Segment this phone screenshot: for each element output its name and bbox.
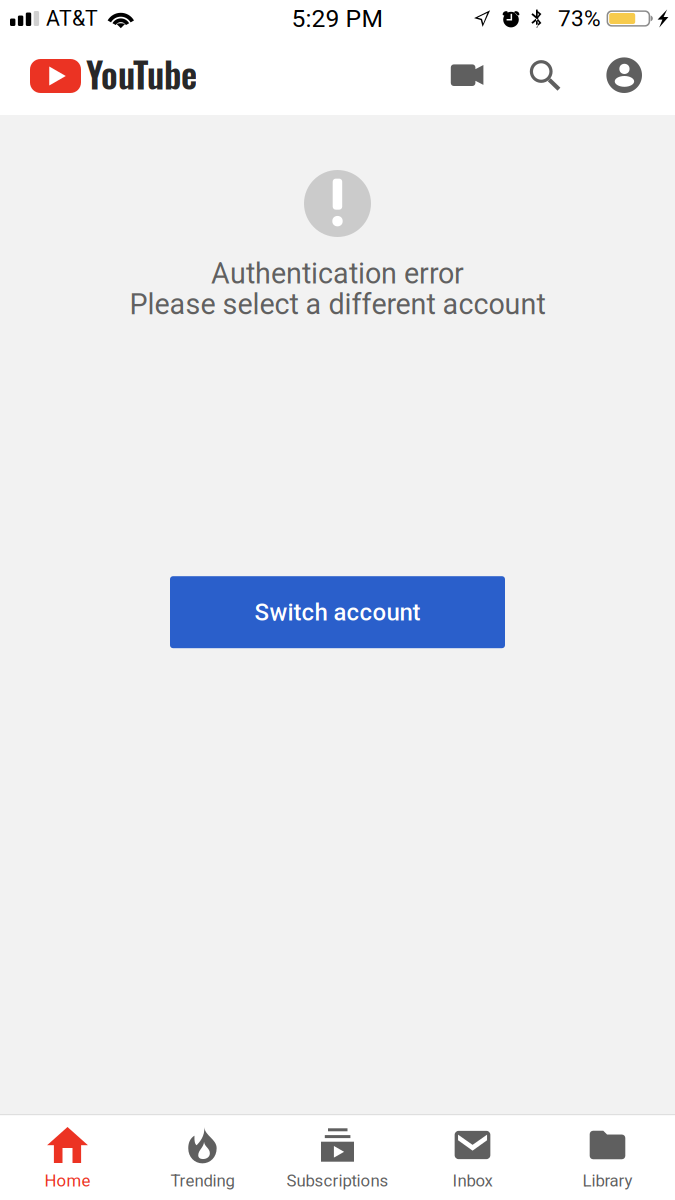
button[interactable]: Account <box>597 48 651 102</box>
button[interactable]: Switch account <box>170 576 505 648</box>
staticText: Switch account <box>254 598 420 626</box>
button[interactable]: Search <box>517 48 572 103</box>
staticText: Library <box>582 1171 632 1191</box>
staticText: Authentication error <box>211 257 464 291</box>
staticText: 5:29 PM <box>291 4 383 33</box>
staticText: Subscriptions <box>286 1171 388 1191</box>
button[interactable]: Inbox <box>405 1114 540 1200</box>
button[interactable]: Library <box>540 1114 675 1200</box>
button[interactable]: Trending <box>135 1114 270 1200</box>
button[interactable]: Create video <box>439 52 495 98</box>
button[interactable]: Subscriptions <box>270 1114 405 1200</box>
staticText: Please select a different account <box>129 288 545 321</box>
staticText: Home <box>44 1171 90 1191</box>
button[interactable]: Home <box>0 1114 135 1200</box>
staticText: YouTube <box>86 47 197 100</box>
staticText: AT&T <box>46 6 98 31</box>
staticText: Trending <box>170 1171 234 1191</box>
staticText: Inbox <box>452 1171 492 1191</box>
staticText: 73% <box>558 5 601 32</box>
button[interactable]: YouTube home <box>30 38 197 114</box>
